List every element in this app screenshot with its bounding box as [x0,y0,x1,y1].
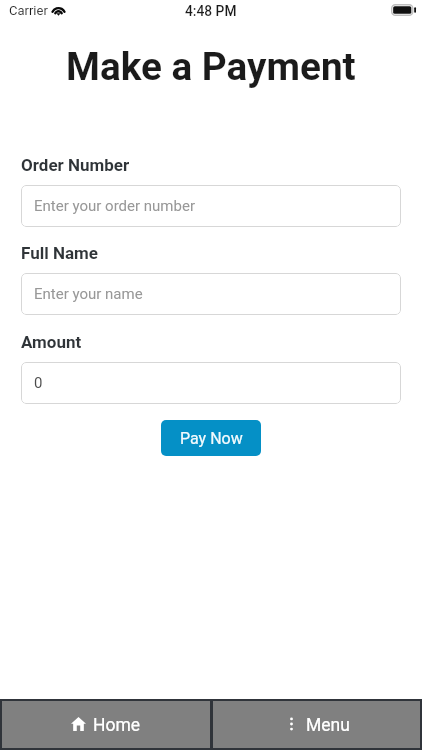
button[interactable]: Enter your order number [21,185,401,227]
staticText: Home [93,715,141,736]
staticText: Amount [21,332,82,352]
button[interactable]: Enter your name [21,273,401,315]
staticText: 0 [34,374,43,392]
staticText: Make a Payment [66,44,356,89]
button[interactable]: Pay Now [161,420,261,456]
button[interactable]: Home [2,701,210,748]
staticText: Full Name [21,243,98,263]
button[interactable]: Menu [213,701,420,748]
staticText: Order Number [21,155,130,175]
staticText: Menu [306,715,350,736]
staticText: Carrier [9,3,48,18]
button[interactable]: 0 [21,362,401,404]
staticText: Enter your order number [34,197,195,215]
staticText: Enter your name [34,285,143,303]
staticText: Pay Now [180,429,243,448]
staticText: 4:48 PM [185,3,237,19]
